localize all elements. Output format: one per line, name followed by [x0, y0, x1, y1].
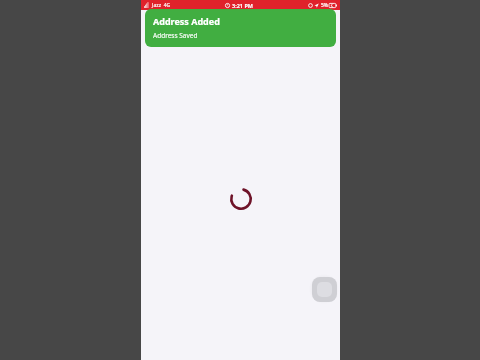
staticText: Jazz 4G: [152, 2, 171, 9]
staticText: 3:21 PM: [232, 2, 253, 9]
staticText: Address Added: [153, 15, 220, 27]
button[interactable]: Add: [312, 277, 337, 302]
staticText: Address Saved: [153, 31, 198, 40]
button[interactable]: Address Added: [145, 9, 336, 47]
staticText: 5%: [320, 2, 328, 9]
